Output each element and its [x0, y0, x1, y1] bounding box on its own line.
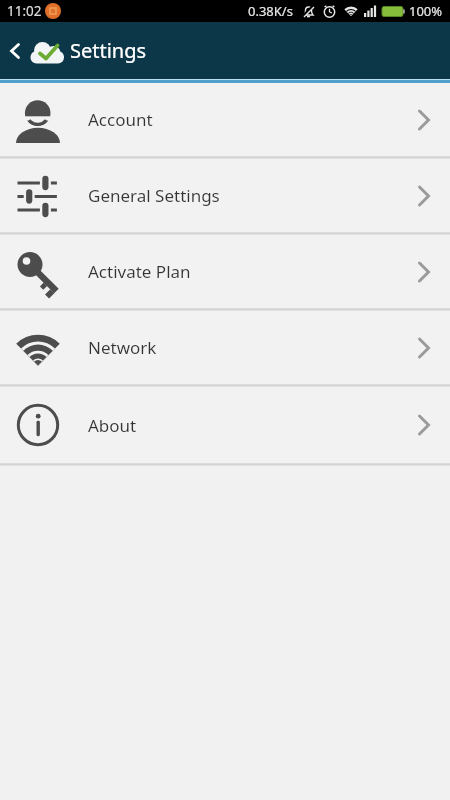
- staticText: General Settings: [88, 184, 220, 207]
- staticText: Settings: [70, 37, 147, 64]
- button[interactable]: General Settings: [0, 159, 450, 232]
- button[interactable]: [0, 22, 30, 79]
- staticText: 100%: [409, 2, 443, 20]
- staticText: Account: [88, 108, 153, 131]
- staticText: 0.38K/s: [248, 2, 293, 20]
- button[interactable]: Activate Plan: [0, 235, 450, 308]
- button[interactable]: About: [0, 387, 450, 463]
- staticText: Network: [88, 336, 157, 359]
- button[interactable]: Network: [0, 311, 450, 384]
- button[interactable]: Account: [0, 83, 450, 156]
- staticText: 11:02: [7, 2, 42, 20]
- staticText: About: [88, 414, 137, 437]
- staticText: Activate Plan: [88, 260, 191, 283]
